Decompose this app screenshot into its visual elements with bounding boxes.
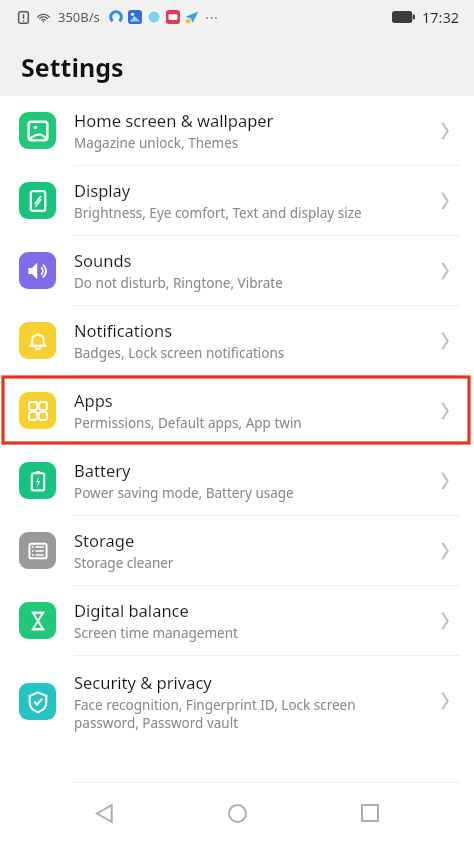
- button[interactable]: Digital balance: [0, 586, 474, 655]
- staticText: Storage cleaner: [74, 554, 174, 572]
- staticText: Face recognition, Fingerprint ID, Lock s…: [74, 696, 356, 732]
- staticText: 17:32: [422, 7, 460, 27]
- staticText: Battery: [74, 459, 131, 481]
- staticText: Badges, Lock screen notifications: [74, 344, 285, 362]
- staticText: Digital balance: [74, 599, 189, 621]
- staticText: Brightness, Eye comfort, Text and displa…: [74, 204, 362, 222]
- button[interactable]: Notifications: [0, 306, 474, 375]
- button[interactable]: Display: [0, 166, 474, 235]
- staticText: Settings: [21, 50, 124, 84]
- staticText: 350B/s: [58, 8, 100, 26]
- button[interactable]: Battery: [0, 446, 474, 515]
- staticText: Notifications: [74, 319, 173, 341]
- button[interactable]: Recent apps: [341, 784, 399, 842]
- button[interactable]: Security & privacy: [0, 656, 474, 746]
- staticText: Magazine unlock, Themes: [74, 134, 239, 152]
- button[interactable]: Sounds: [0, 236, 474, 305]
- staticText: ⋯: [205, 10, 218, 25]
- staticText: Permissions, Default apps, App twin: [74, 414, 302, 432]
- staticText: Sounds: [74, 249, 132, 271]
- button[interactable]: Home screen & wallpaper: [0, 96, 474, 165]
- staticText: Security & privacy: [74, 671, 212, 693]
- button[interactable]: Back: [75, 784, 133, 842]
- staticText: Power saving mode, Battery usage: [74, 484, 294, 502]
- staticText: Storage: [74, 529, 135, 551]
- button[interactable]: Storage: [0, 516, 474, 585]
- staticText: Home screen & wallpaper: [74, 109, 274, 131]
- staticText: Display: [74, 179, 131, 201]
- button[interactable]: Apps: [0, 376, 474, 445]
- staticText: Screen time management: [74, 624, 238, 642]
- staticText: Apps: [74, 389, 113, 411]
- button[interactable]: Home: [208, 784, 266, 842]
- staticText: Do not disturb, Ringtone, Vibrate: [74, 274, 283, 292]
